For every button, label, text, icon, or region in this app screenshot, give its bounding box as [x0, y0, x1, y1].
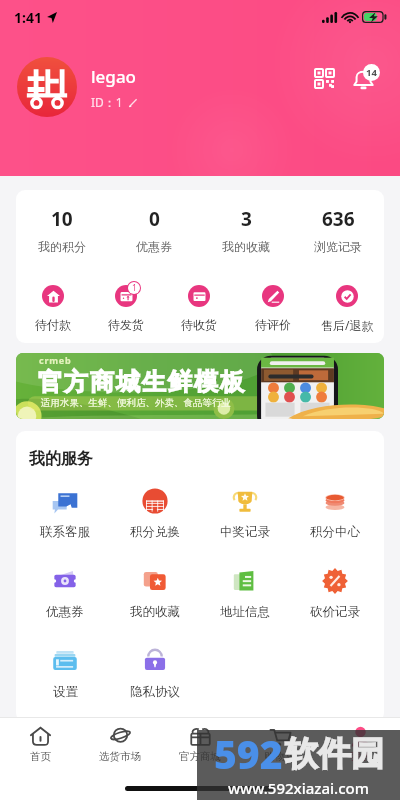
staticText: 待评价	[255, 317, 291, 332]
staticText: 592	[214, 727, 283, 780]
button[interactable]: 积分兑换	[110, 486, 200, 540]
button[interactable]: Notifications	[351, 61, 383, 93]
button[interactable]: 联系客服	[20, 486, 110, 540]
button[interactable]: Avatar	[17, 57, 77, 117]
staticText: 联系客服	[40, 524, 90, 540]
staticText: 待发货	[108, 317, 144, 332]
button[interactable]: 积分中心	[290, 486, 380, 540]
button[interactable]: 地址信息	[200, 566, 290, 620]
staticText: 10	[51, 206, 73, 232]
staticText: 购物车	[264, 750, 296, 763]
button[interactable]: 1	[89, 281, 162, 332]
staticText: 官方商城	[179, 750, 221, 763]
staticText: 官方商城生鲜模板	[37, 367, 245, 397]
staticText: 售后/退款	[321, 317, 374, 333]
button[interactable]: 0	[108, 206, 200, 254]
staticText: 软件园	[285, 733, 384, 775]
staticText: 待付款	[35, 317, 71, 332]
staticText: 中奖记录	[220, 524, 270, 540]
button[interactable]: 636	[292, 206, 384, 254]
button[interactable]: 设置	[20, 646, 110, 700]
staticText: 适用水果、生鲜、便利店、外卖、食品等行业	[41, 397, 231, 409]
staticText: 首页	[30, 750, 51, 763]
staticText: 地址信息	[220, 604, 270, 620]
button[interactable]: 10	[16, 206, 108, 254]
button[interactable]: 选货市场	[80, 726, 160, 763]
staticText: 我的积分	[38, 239, 86, 254]
button[interactable]: Scan QR code	[309, 63, 339, 93]
staticText: 优惠券	[46, 604, 84, 620]
button[interactable]: 官方商城	[160, 726, 240, 763]
staticText: 636	[322, 206, 355, 232]
button[interactable]: 首页	[0, 726, 80, 763]
staticText: crmeb	[39, 354, 72, 366]
staticText: 我的收藏	[222, 239, 270, 254]
staticText: 隐私协议	[130, 684, 180, 700]
button[interactable]: 待收货	[162, 281, 236, 332]
button[interactable]: 3	[200, 206, 292, 254]
staticText: 砍价记录	[310, 604, 360, 620]
button[interactable]: 待评价	[236, 281, 310, 332]
staticText: 优惠券	[136, 239, 172, 254]
staticText: 0	[149, 206, 160, 232]
staticText: 浏览记录	[314, 239, 362, 254]
button[interactable]: 我的收藏	[110, 566, 200, 620]
staticText: 待收货	[181, 317, 217, 332]
button[interactable]: 优惠券	[20, 566, 110, 620]
staticText: 我的收藏	[130, 604, 180, 620]
staticText: 我的服务	[29, 449, 93, 469]
button[interactable]: 我的	[320, 726, 400, 763]
staticText: 1:41	[14, 8, 42, 27]
button[interactable]: 中奖记录	[200, 486, 290, 540]
staticText: 14	[366, 66, 377, 79]
button[interactable]: 售后/退款	[310, 281, 384, 333]
button[interactable]: 官方商城生鲜模板 banner	[16, 353, 384, 419]
staticText: 3	[241, 206, 252, 232]
button[interactable]: 隐私协议	[110, 646, 200, 700]
staticText: 设置	[53, 684, 78, 700]
staticText: 1	[132, 282, 137, 294]
staticText: www.592xiazai.com	[228, 778, 369, 795]
staticText: 积分中心	[310, 524, 360, 540]
staticText: 选货市场	[99, 750, 141, 763]
staticText: 我的	[350, 750, 371, 763]
staticText: 积分兑换	[130, 524, 180, 540]
staticText: ID：1	[91, 94, 123, 110]
button[interactable]: 砍价记录	[290, 566, 380, 620]
button[interactable]: 购物车	[240, 726, 320, 763]
button[interactable]: 待付款	[16, 281, 89, 332]
staticText: legao	[91, 65, 136, 88]
